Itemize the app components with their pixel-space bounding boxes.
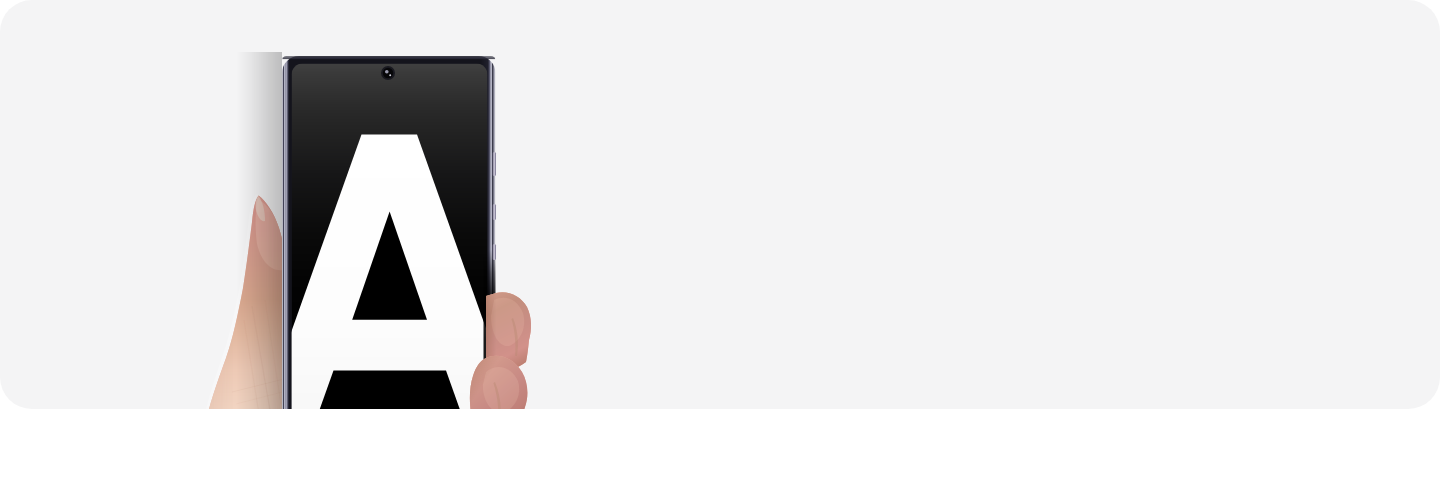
button[interactable]: Hand holding a phone displaying the lett… [0, 0, 1440, 480]
